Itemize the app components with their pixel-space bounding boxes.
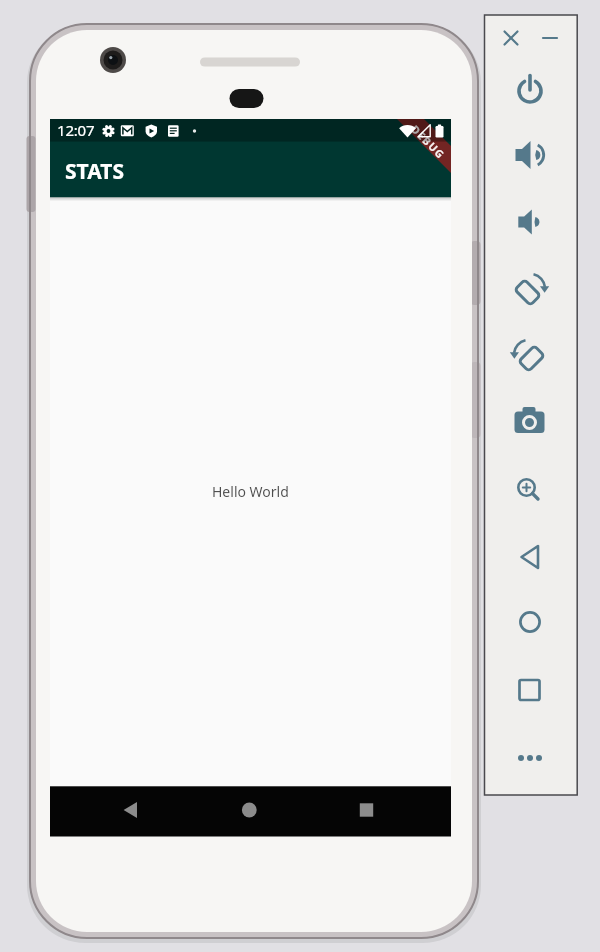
- button[interactable]: [509, 134, 552, 176]
- button[interactable]: [509, 69, 552, 111]
- button[interactable]: [536, 24, 564, 52]
- button[interactable]: [509, 669, 552, 711]
- button[interactable]: [110, 786, 200, 836]
- button[interactable]: [497, 24, 525, 52]
- button[interactable]: [509, 401, 552, 443]
- button[interactable]: [509, 201, 552, 243]
- staticText: DEBUG: [408, 122, 448, 162]
- staticText: Hello World: [212, 482, 289, 501]
- button[interactable]: [509, 269, 552, 311]
- staticText: 12:07: [57, 120, 95, 140]
- button[interactable]: [509, 536, 552, 578]
- button[interactable]: [205, 786, 295, 836]
- staticText: STATS: [65, 157, 124, 186]
- button[interactable]: [509, 601, 552, 643]
- button[interactable]: [509, 737, 552, 779]
- button[interactable]: [509, 468, 552, 510]
- button[interactable]: [322, 786, 412, 836]
- button[interactable]: [509, 335, 552, 377]
